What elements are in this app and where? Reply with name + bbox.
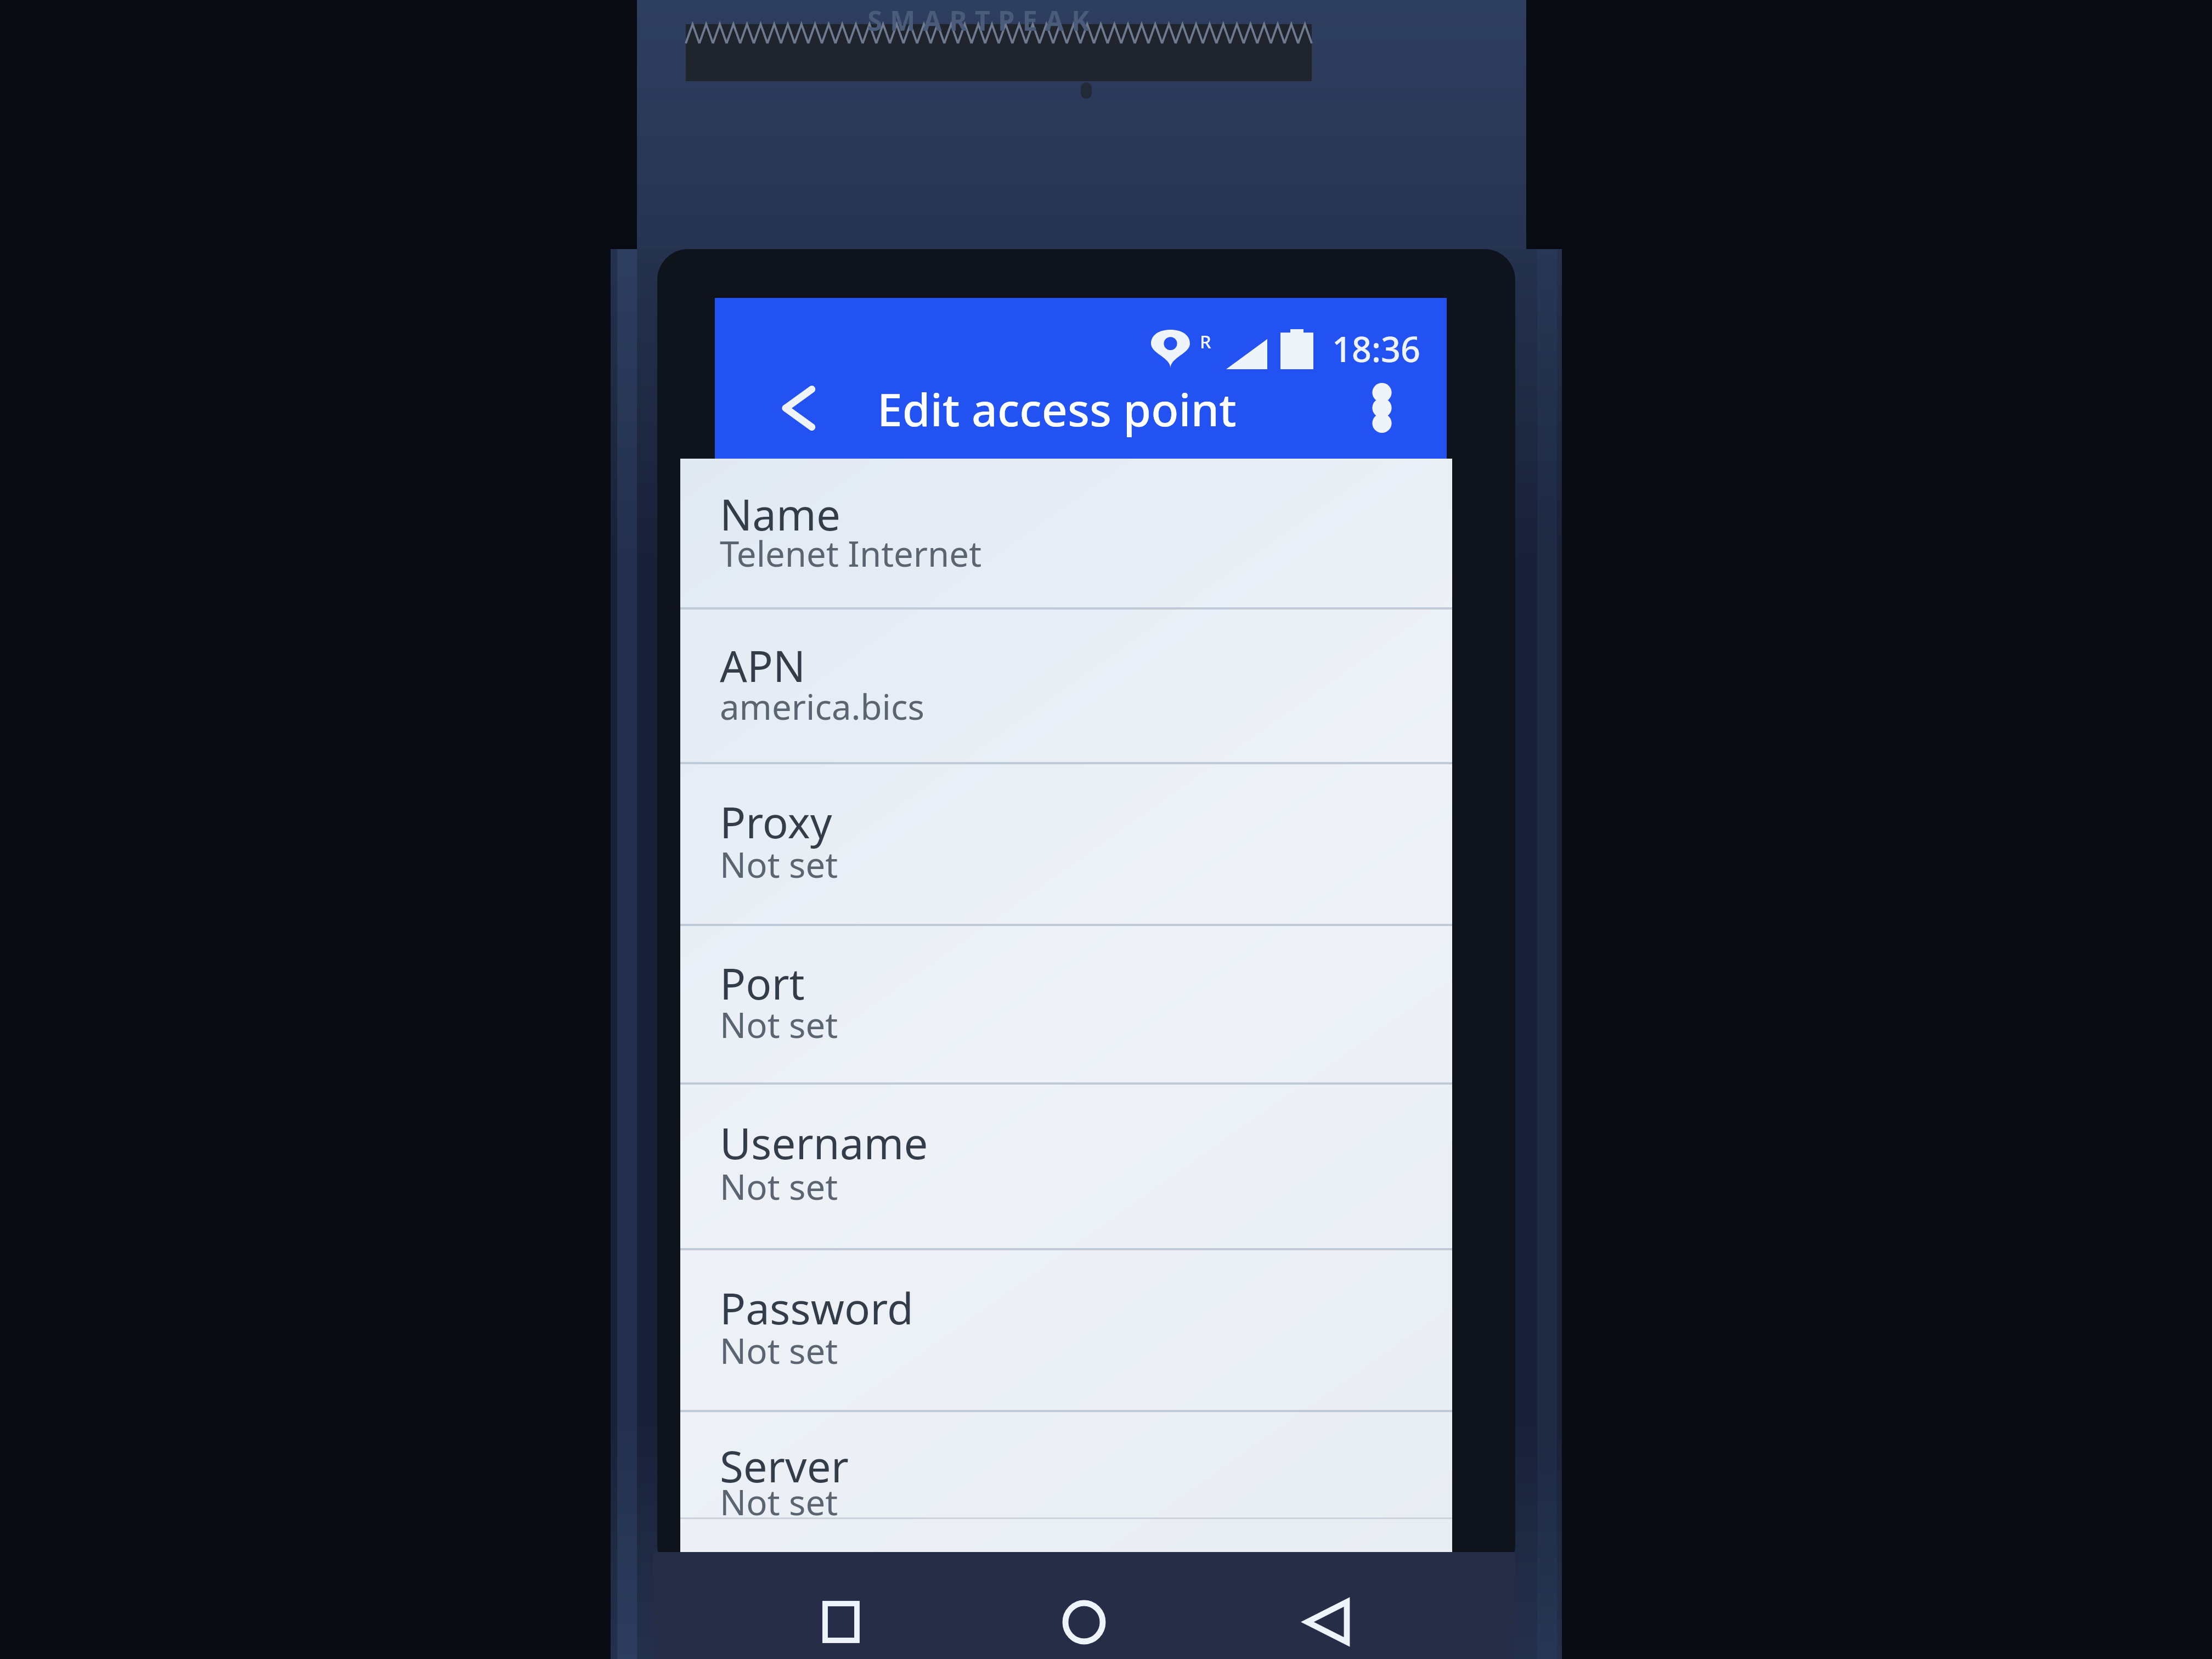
staticText: america.bics (720, 682, 924, 730)
staticText: Username (720, 1114, 928, 1172)
button[interactable]: Proxy (680, 764, 1452, 926)
button[interactable]: APN (680, 610, 1452, 764)
staticText: SMARTPEAK (867, 2, 1097, 38)
staticText: Password (720, 1279, 913, 1337)
button[interactable]: Username (680, 1085, 1452, 1250)
button[interactable]: Name (680, 459, 1452, 610)
staticText: Not set (720, 1001, 838, 1048)
staticText: Not set (720, 1478, 838, 1525)
staticText: Proxy (720, 793, 832, 851)
staticText: R (1200, 329, 1211, 353)
staticText: Telenet Internet (720, 529, 982, 577)
staticText: 18:36 (1332, 325, 1420, 373)
button[interactable]: Home (1029, 1587, 1139, 1657)
button[interactable]: More options (1335, 365, 1428, 451)
staticText: Not set (720, 1163, 838, 1210)
button[interactable]: Password (680, 1250, 1452, 1412)
button[interactable]: Navigate up (744, 366, 851, 449)
button[interactable]: Server (680, 1412, 1452, 1552)
staticText: Server (720, 1437, 849, 1495)
staticText: Not set (720, 1327, 838, 1374)
button[interactable]: Port (680, 926, 1452, 1085)
staticText: Port (720, 954, 805, 1012)
button[interactable]: Recent apps (786, 1587, 896, 1657)
staticText: Not set (720, 840, 838, 888)
staticText: Name (720, 485, 841, 543)
button[interactable]: Back (1272, 1587, 1383, 1657)
staticText: Edit access point (877, 378, 1237, 439)
staticText: APN (720, 636, 806, 695)
